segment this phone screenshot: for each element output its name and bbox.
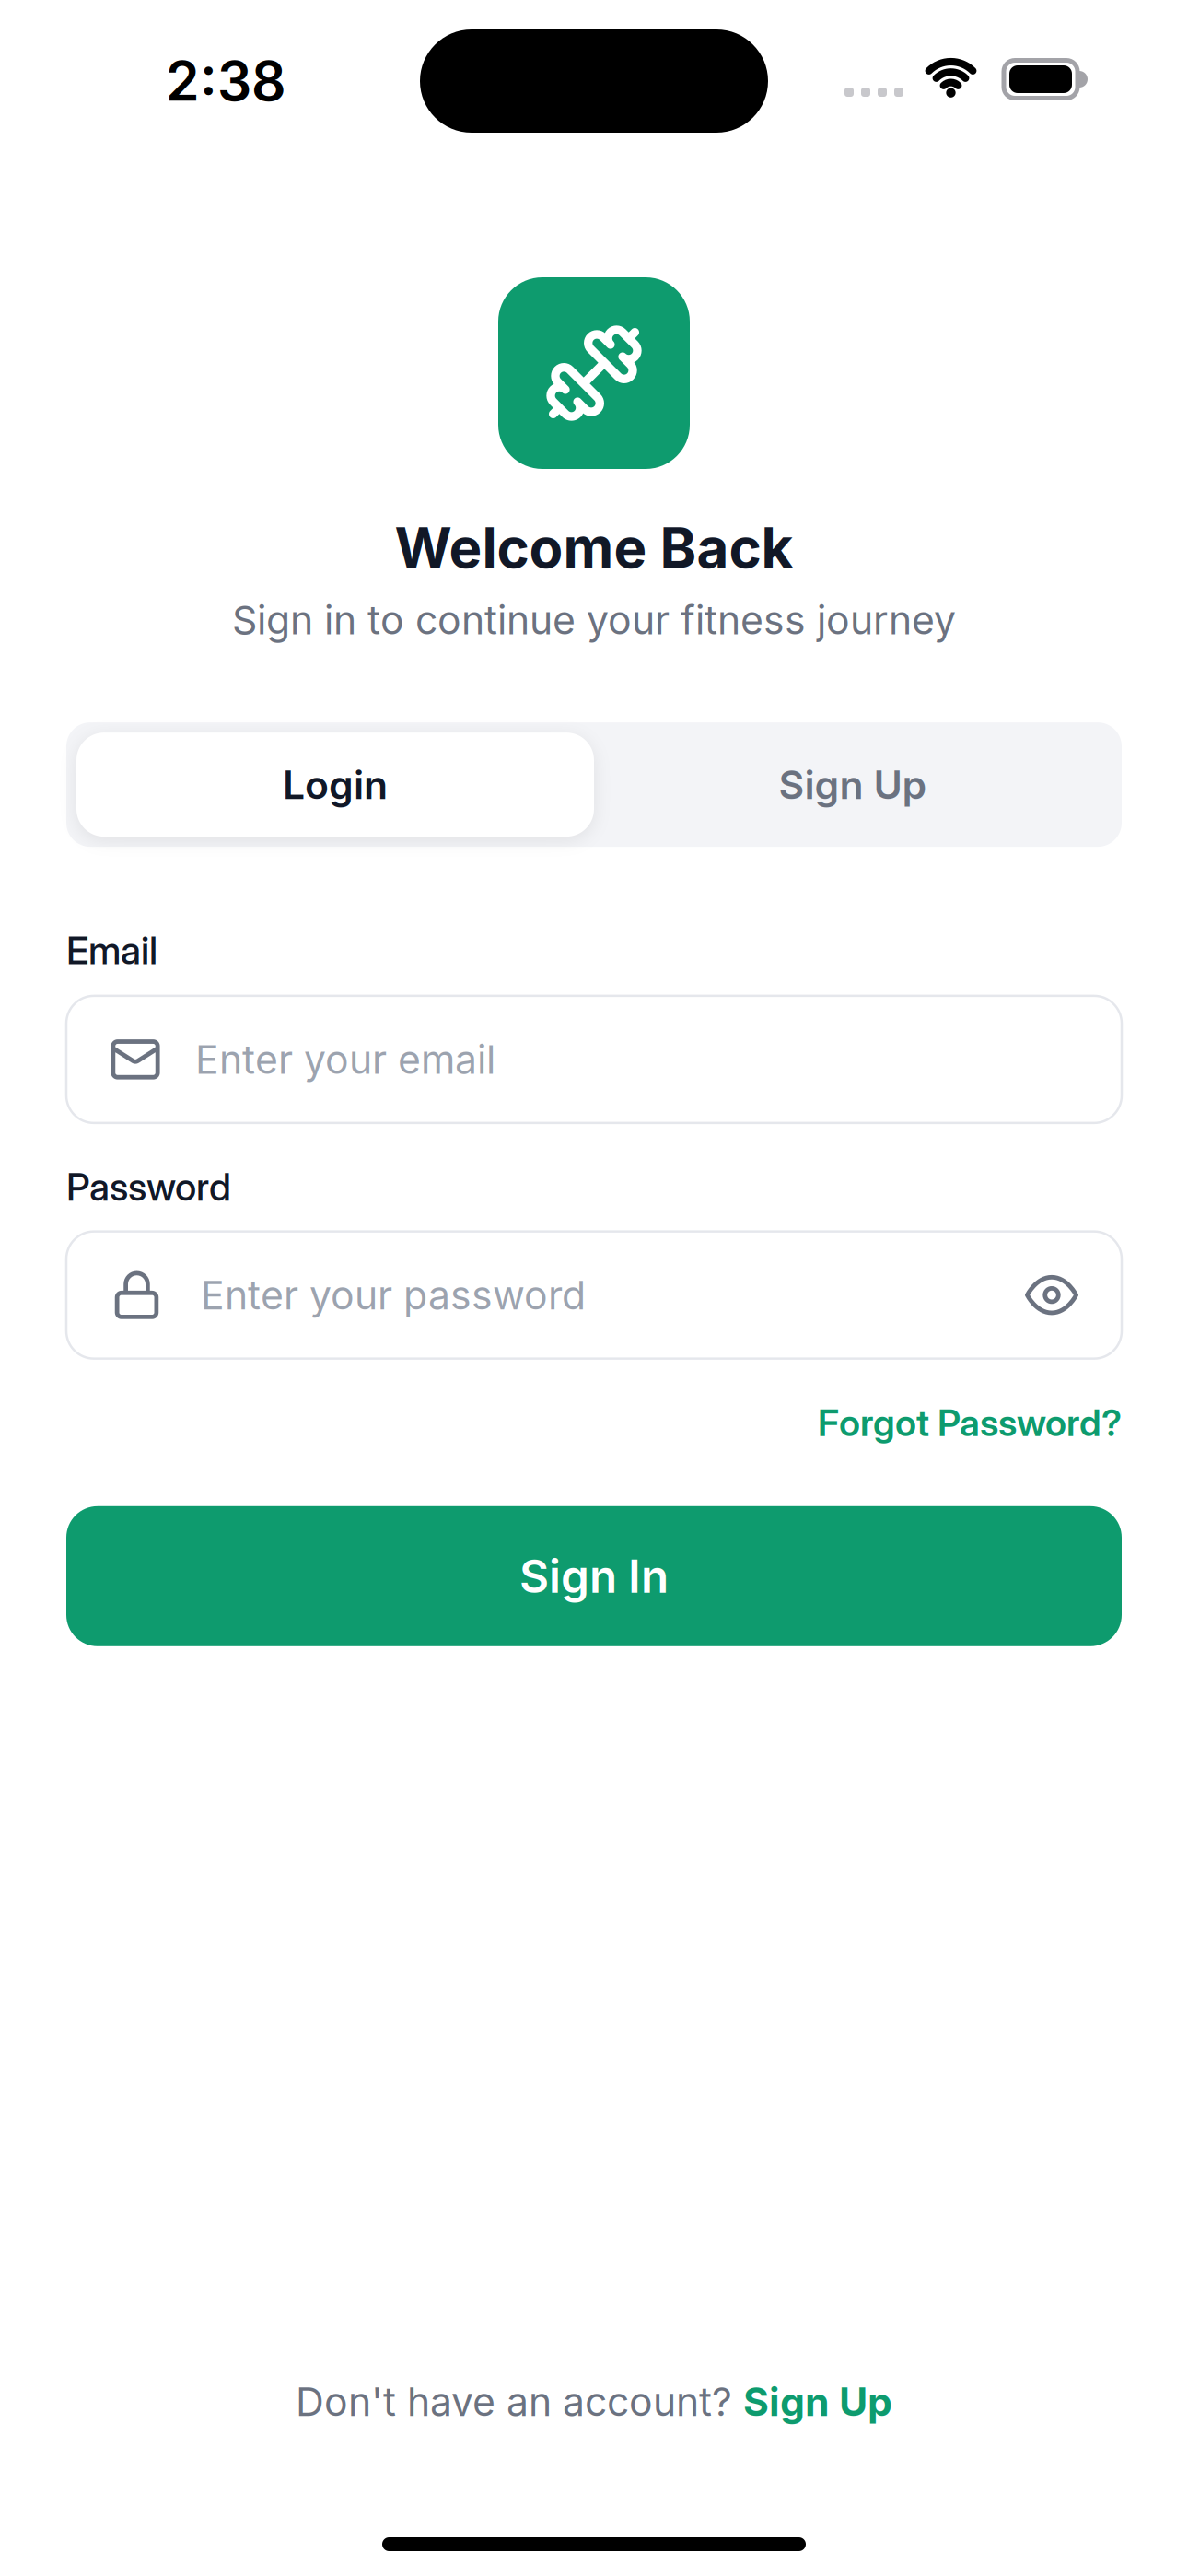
staticText: Sign in to continue your fitness journey — [232, 597, 956, 643]
button[interactable]: Forgot Password? — [818, 1401, 1122, 1444]
button[interactable]: Enter your email — [0, 996, 1188, 1123]
staticText: Sign Up — [779, 761, 927, 808]
staticText: Login — [283, 761, 388, 808]
staticText: Password — [66, 1164, 231, 1209]
button[interactable]: Sign Up — [594, 733, 1112, 837]
button[interactable]: Enter your password — [0, 1231, 1188, 1359]
staticText: Sign In — [519, 1549, 669, 1603]
staticText: Don't have an account? — [296, 2379, 743, 2425]
staticText: Sign Up — [743, 2379, 892, 2425]
staticText: Forgot Password? — [818, 1401, 1122, 1444]
staticText: Welcome Back — [395, 515, 793, 580]
staticText: Email — [66, 928, 157, 973]
button[interactable]: Login — [76, 733, 594, 837]
staticText: Enter your password — [201, 1272, 586, 1318]
staticText: Enter your email — [195, 1036, 495, 1083]
button[interactable]: Show password — [1025, 1268, 1078, 1322]
staticText: 2:38 — [166, 49, 286, 113]
button[interactable]: Sign In — [0, 1506, 1188, 1646]
button[interactable]: Sign Up — [743, 2379, 892, 2425]
